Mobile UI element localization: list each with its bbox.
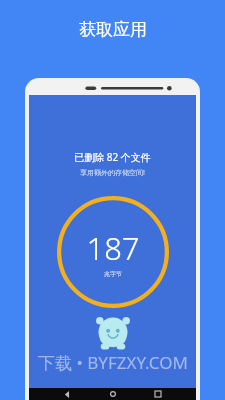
staticText: 187 xyxy=(86,227,140,269)
other: Mascot xyxy=(91,312,135,352)
staticText: 兆字节 xyxy=(104,270,122,278)
staticText: 获取应用 xyxy=(79,19,147,40)
staticText: 下载 • BYFZXY.COM xyxy=(38,351,188,374)
staticText: 已删除 82 个文件 xyxy=(74,150,151,164)
button[interactable]: 187 xyxy=(57,196,169,308)
button[interactable]: Recents xyxy=(151,388,165,400)
button[interactable]: Back xyxy=(60,388,74,400)
button[interactable]: Home xyxy=(106,388,120,400)
staticText: 享用额外的存储空间! xyxy=(80,168,145,178)
